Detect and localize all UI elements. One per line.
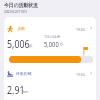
staticText: 5,000 [44,40,59,50]
staticText: 歩数 [17,26,25,31]
staticText: 1日の目標 [44,34,61,39]
other: 移動距離の詳細 [89,71,93,75]
staticText: 2.91 [7,82,25,97]
staticText: 歩 [60,42,64,46]
staticText: 5,006 [7,36,30,51]
staticText: 2023年2月10日 [4,9,28,14]
button[interactable]: 歩数 [4,17,96,68]
staticText: 歩 [29,43,33,48]
staticText: 19:04 [76,27,85,32]
staticText: 今日の活動状況 [4,2,38,9]
staticText: km [23,89,29,94]
other: 歩数の詳細 [89,26,93,30]
staticText: 19:04 [76,72,85,77]
button[interactable]: 移動距離 [4,68,96,100]
staticText: 移動距離 [16,71,32,76]
